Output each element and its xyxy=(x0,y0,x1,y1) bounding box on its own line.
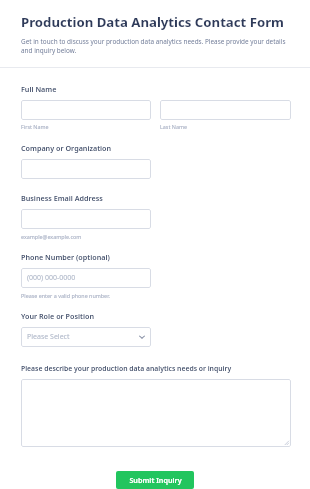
staticText: Full Name xyxy=(21,84,57,94)
button[interactable] xyxy=(21,100,151,120)
staticText: Last Name xyxy=(160,123,187,130)
staticText: Business Email Address xyxy=(21,193,103,203)
button[interactable] xyxy=(21,159,151,179)
button[interactable]: Select your role or position xyxy=(21,327,151,347)
button[interactable] xyxy=(160,100,291,120)
staticText: Get in touch to discuss your production … xyxy=(21,37,288,55)
button[interactable]: (000) 000-0000 xyxy=(21,268,151,288)
staticText: Company or Organization xyxy=(21,143,112,153)
staticText: Phone Number (optional) xyxy=(21,252,110,262)
staticText: example@example.com xyxy=(21,233,82,240)
staticText: Please describe your production data ana… xyxy=(21,364,232,373)
staticText: Please enter a valid phone number. xyxy=(21,292,110,299)
staticText: Production Data Analytics Contact Form xyxy=(21,13,284,31)
staticText: Your Role or Position xyxy=(21,311,94,321)
staticText: First Name xyxy=(21,123,49,130)
staticText: (000) 000-0000 xyxy=(27,273,76,283)
button[interactable] xyxy=(21,209,151,229)
button[interactable] xyxy=(21,379,291,447)
button[interactable]: Submit Inquiry xyxy=(116,471,194,489)
staticText: Please Select xyxy=(27,332,70,342)
staticText: Submit Inquiry xyxy=(129,475,182,485)
